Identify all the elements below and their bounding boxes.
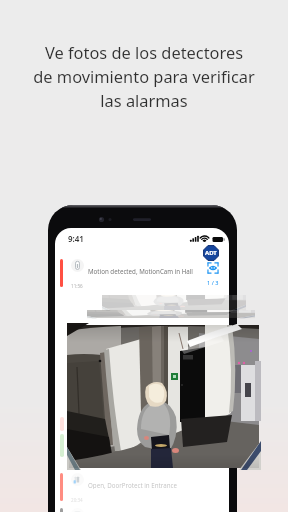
staticText: 9:41 — [68, 233, 84, 244]
staticText: 1 / 3 — [207, 279, 219, 287]
staticText: Ve fotos de los detectores de movimiento… — [0, 41, 288, 112]
button[interactable]: 20:02 — [55, 505, 229, 512]
button[interactable]: 11:56 — [55, 256, 229, 291]
button[interactable]: 20:34 — [55, 470, 229, 505]
staticText: 11:56 — [71, 283, 83, 289]
button[interactable]: ADT — [203, 245, 219, 261]
staticText: Motion detected, MotionCam in Hall — [88, 267, 193, 275]
staticText: Open, DoorProtect in Entrance — [88, 481, 177, 489]
button[interactable]: View photos — [202, 261, 224, 287]
staticText: 20:34 — [71, 497, 83, 503]
staticText: ADT — [205, 249, 217, 257]
button[interactable]: Camera snapshot — [69, 325, 259, 468]
